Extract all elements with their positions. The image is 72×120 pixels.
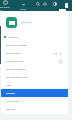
staticText: @xped.ca xyxy=(21,21,32,24)
button[interactable]: Help xyxy=(1,81,68,89)
staticText: Try top features xyxy=(6,60,24,63)
button[interactable]: Appearance xyxy=(52,1,58,7)
staticText: Check for updates xyxy=(6,68,26,71)
staticText: Add account xyxy=(6,100,20,103)
staticText: Available xyxy=(8,36,18,39)
staticText: Work location xyxy=(6,52,21,55)
staticText: Sign out xyxy=(6,108,15,111)
button[interactable]: Discover what's new xyxy=(1,73,68,81)
staticText: Set status message xyxy=(6,44,27,47)
button[interactable]: Check for updates xyxy=(1,65,68,73)
staticText: Settings xyxy=(6,92,15,95)
button[interactable]: Account xyxy=(63,1,71,9)
button[interactable]: Available xyxy=(1,33,68,41)
button[interactable]: More xyxy=(18,0,28,11)
staticText: Keyboard xyxy=(0,5,10,11)
button[interactable]: Set status message xyxy=(1,41,68,49)
button[interactable]: Settings xyxy=(1,89,68,97)
staticText: Discover what's new xyxy=(6,76,28,79)
button[interactable]: Search xyxy=(35,1,41,7)
staticText: Help xyxy=(6,84,12,87)
staticText: More xyxy=(20,7,27,10)
button[interactable]: Add account xyxy=(1,97,68,105)
button[interactable]: Notifications xyxy=(42,1,48,7)
button[interactable]: Keyboard xyxy=(0,0,10,11)
button[interactable]: Try top features xyxy=(1,57,68,65)
button[interactable]: Work location xyxy=(1,49,68,57)
staticText: Off xyxy=(54,52,58,55)
button[interactable]: Sign out xyxy=(1,105,68,113)
